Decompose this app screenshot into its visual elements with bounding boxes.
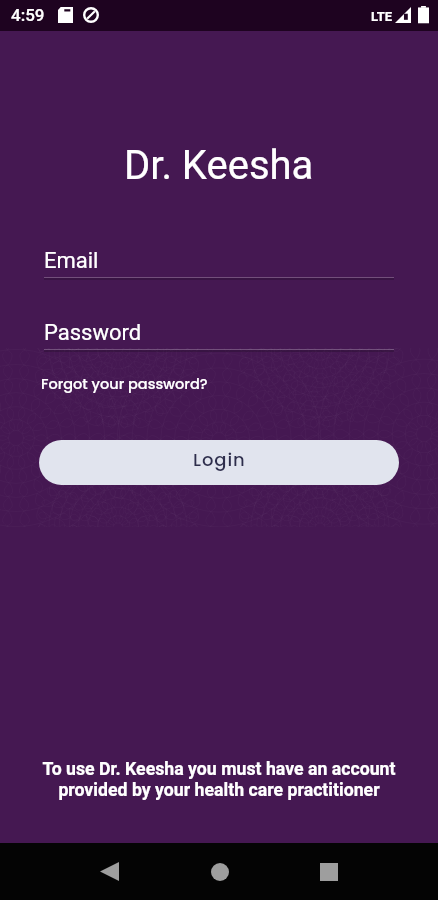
staticText: Forgot your password? xyxy=(41,374,208,394)
staticText: LTE xyxy=(371,9,393,24)
staticText: Dr. Keesha xyxy=(124,142,314,189)
staticText: 4:59 xyxy=(11,5,45,25)
button[interactable]: Back xyxy=(85,843,134,900)
staticText: Email xyxy=(44,248,99,274)
button[interactable]: Forgot your password? xyxy=(40,372,209,396)
staticText: Password xyxy=(44,320,142,346)
staticText: To use Dr. Keesha you must have an accou… xyxy=(40,759,398,800)
button[interactable]: Login xyxy=(39,440,399,485)
button[interactable]: Recent apps xyxy=(304,843,353,900)
button[interactable]: Home xyxy=(195,843,244,900)
staticText: Login xyxy=(193,447,246,472)
